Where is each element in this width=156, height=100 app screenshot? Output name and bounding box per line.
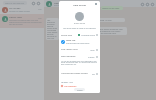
staticText: Tap here for media and files: [9, 10, 30, 12]
staticText: click here for group info: [54, 4, 73, 6]
staticText: MEMBERS: 1/200: [61, 81, 73, 83]
button[interactable]: More: [150, 2, 154, 6]
button[interactable]: Add Members: [61, 84, 98, 88]
staticText: Invite Link: [66, 39, 76, 42]
staticText: You can set the expire time of the messa…: [61, 60, 98, 66]
button[interactable]: Invite Link: [61, 39, 98, 44]
button[interactable]: Chat Length Limit: [61, 47, 98, 52]
staticText: Automatically Delete Groups: [61, 72, 88, 75]
staticText: Custom: [88, 56, 95, 58]
button[interactable]: Search: [140, 2, 144, 6]
staticText: Keep Messages: [61, 55, 76, 58]
staticText: chat.whatsapp.com/lorem/ipsum: [66, 42, 90, 44]
staticText: New Group: [73, 3, 86, 6]
staticText: Search or start new chat: [5, 2, 25, 4]
staticText: Available group: [81, 34, 95, 37]
button[interactable]: Group Type: [61, 33, 98, 37]
staticText: Let us start messaging. No cost.: [85, 19, 112, 21]
staticText: None: [90, 49, 95, 51]
button[interactable]: Keep Messages: [61, 54, 98, 59]
button[interactable]: Close: [94, 2, 98, 6]
staticText: Official Team: [9, 16, 23, 19]
button[interactable]: Filter: [31, 1, 35, 5]
staticText: Group Type: [61, 34, 72, 37]
button[interactable]: My Storage: [0, 6, 44, 14]
staticText: Thanks for the invite: [102, 7, 120, 9]
staticText: 10:31: [38, 17, 42, 19]
button[interactable]: Attach: [145, 2, 149, 6]
button[interactable]: Search or start new chat: [3, 1, 27, 5]
staticText: My Storage: [9, 7, 21, 10]
button[interactable]: Menu: [36, 1, 40, 5]
staticText: Add Members: [64, 85, 77, 88]
staticText: If you have any offers please remember y…: [85, 28, 126, 34]
button[interactable]: Add group icon: [75, 12, 84, 21]
button[interactable]: Create: [74, 88, 85, 91]
button[interactable]: Automatically Delete Groups: [61, 71, 98, 76]
staticText: Create: [77, 89, 83, 91]
staticText: 10:31: [38, 8, 42, 10]
staticText: Chat Length Limit: [61, 48, 78, 51]
staticText: Hey everyone welcome aboard. Please read…: [47, 19, 58, 39]
staticText: Official Team: [54, 1, 69, 4]
staticText: Off: [92, 73, 95, 75]
staticText: Welcome to the official team chat here. …: [9, 19, 42, 25]
staticText: group name: [59, 22, 100, 25]
button[interactable]: Official Team: [0, 14, 44, 28]
staticText: This group name is visible to all member…: [62, 27, 97, 29]
